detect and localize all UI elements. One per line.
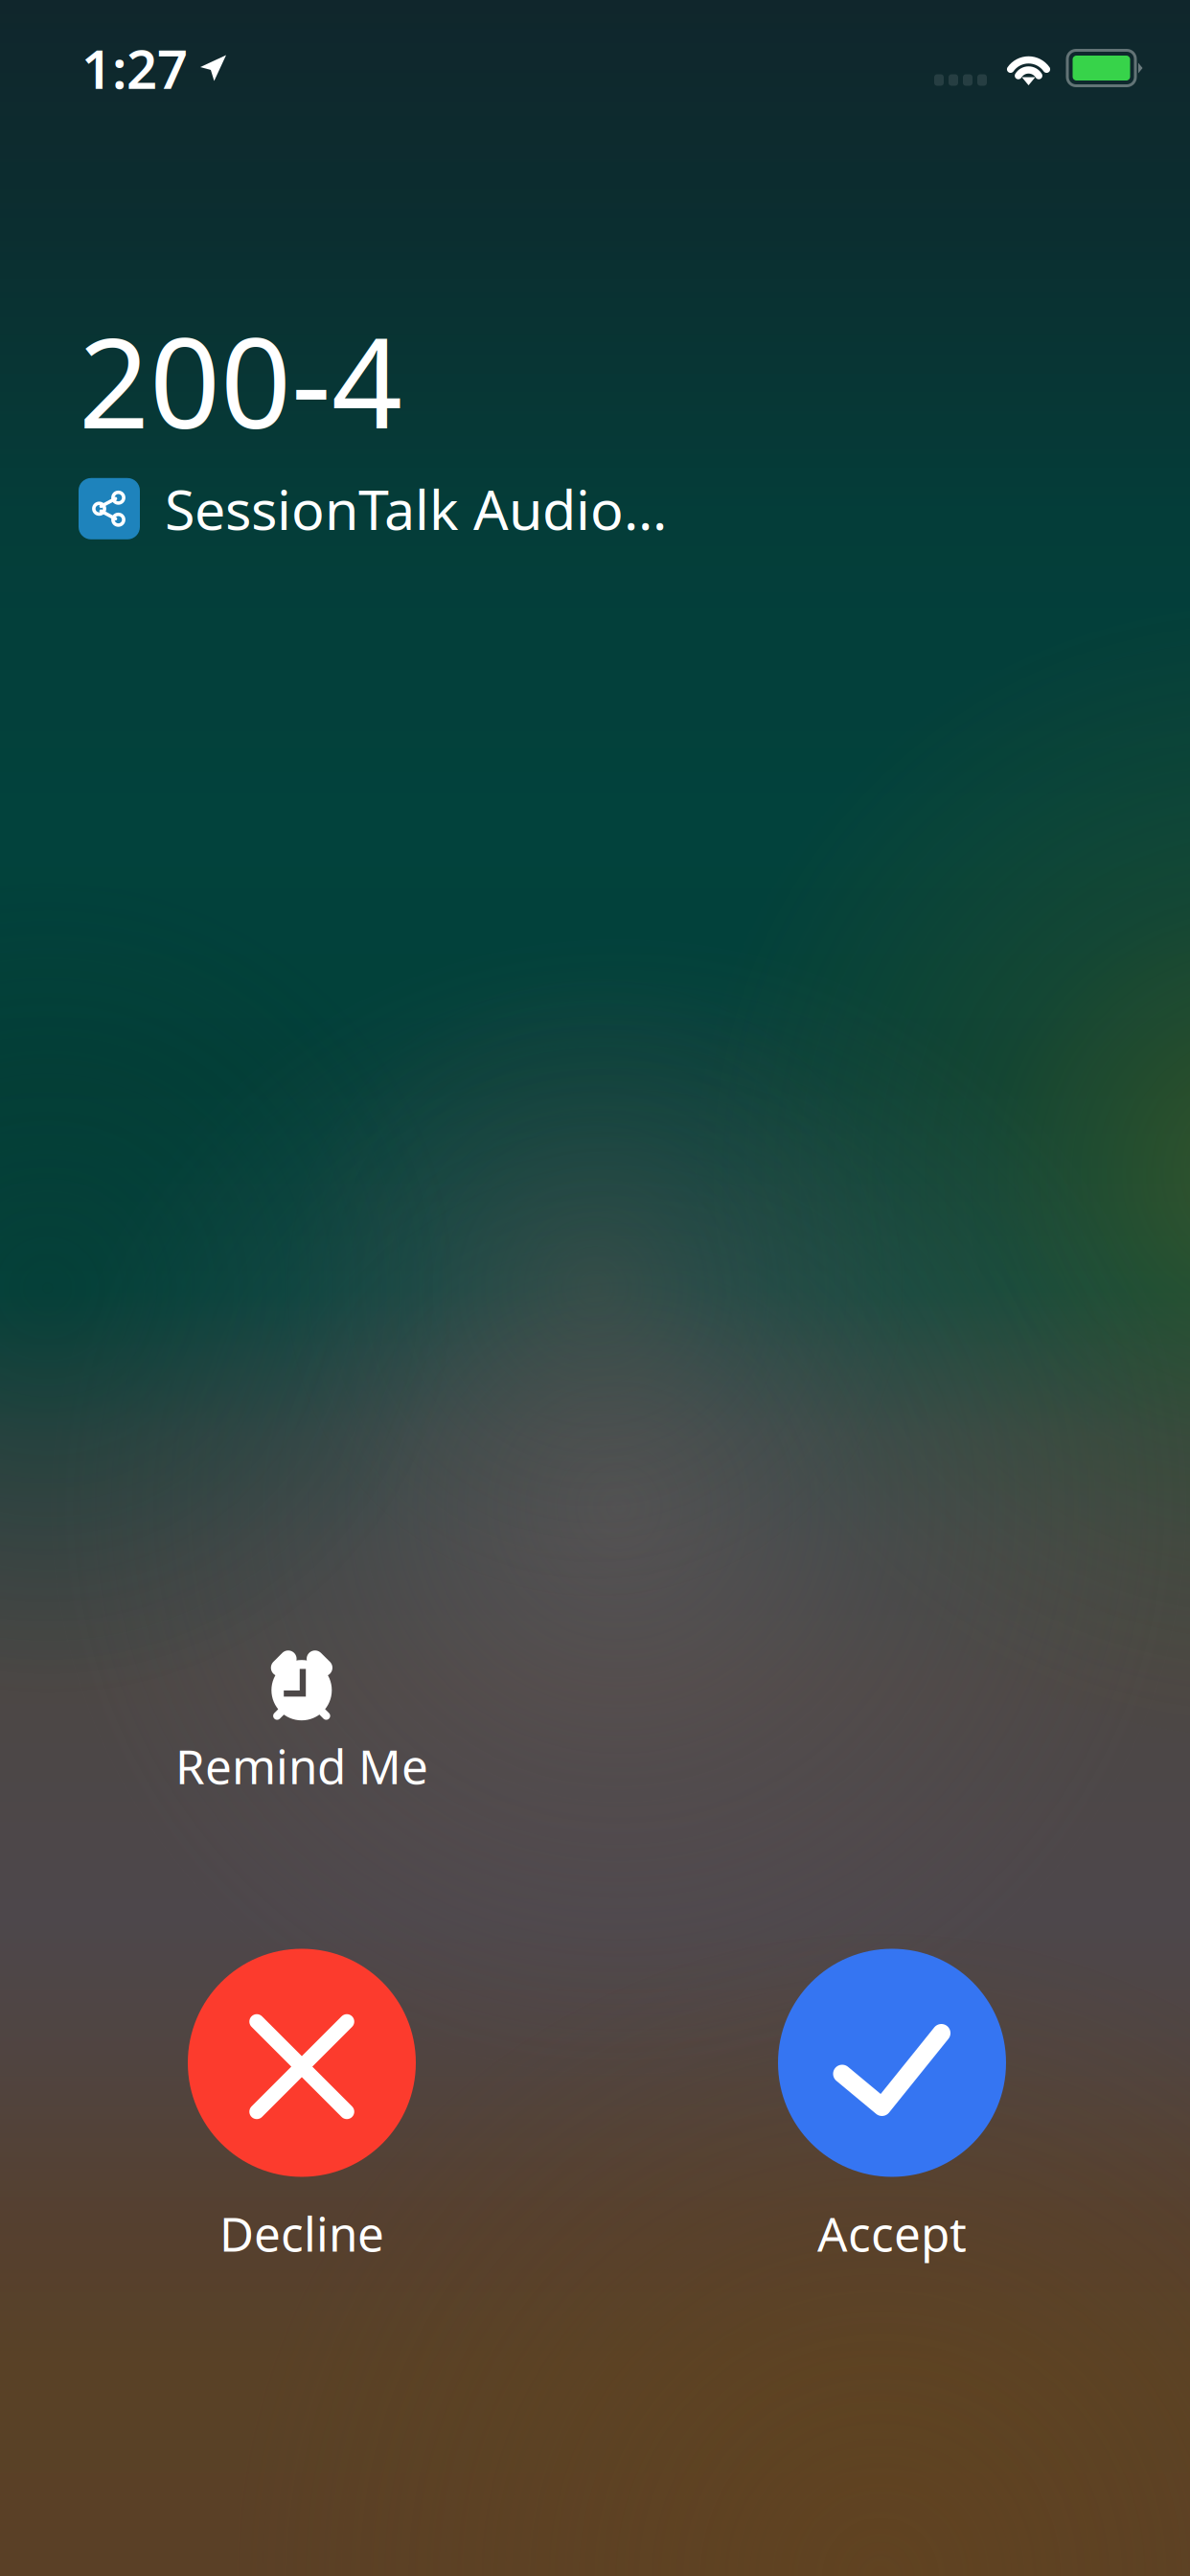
button[interactable]: Accept — [729, 1949, 1055, 2265]
staticText: Accept — [817, 2202, 967, 2265]
staticText: 200-4 — [79, 298, 402, 463]
button[interactable]: Decline — [139, 1949, 465, 2265]
staticText: Decline — [219, 2202, 384, 2265]
staticText: 1:27 — [81, 32, 188, 104]
button[interactable]: Remind Me — [139, 1645, 465, 1797]
staticText: SessionTalk Audio... — [165, 472, 667, 545]
staticText: Remind Me — [175, 1735, 428, 1797]
